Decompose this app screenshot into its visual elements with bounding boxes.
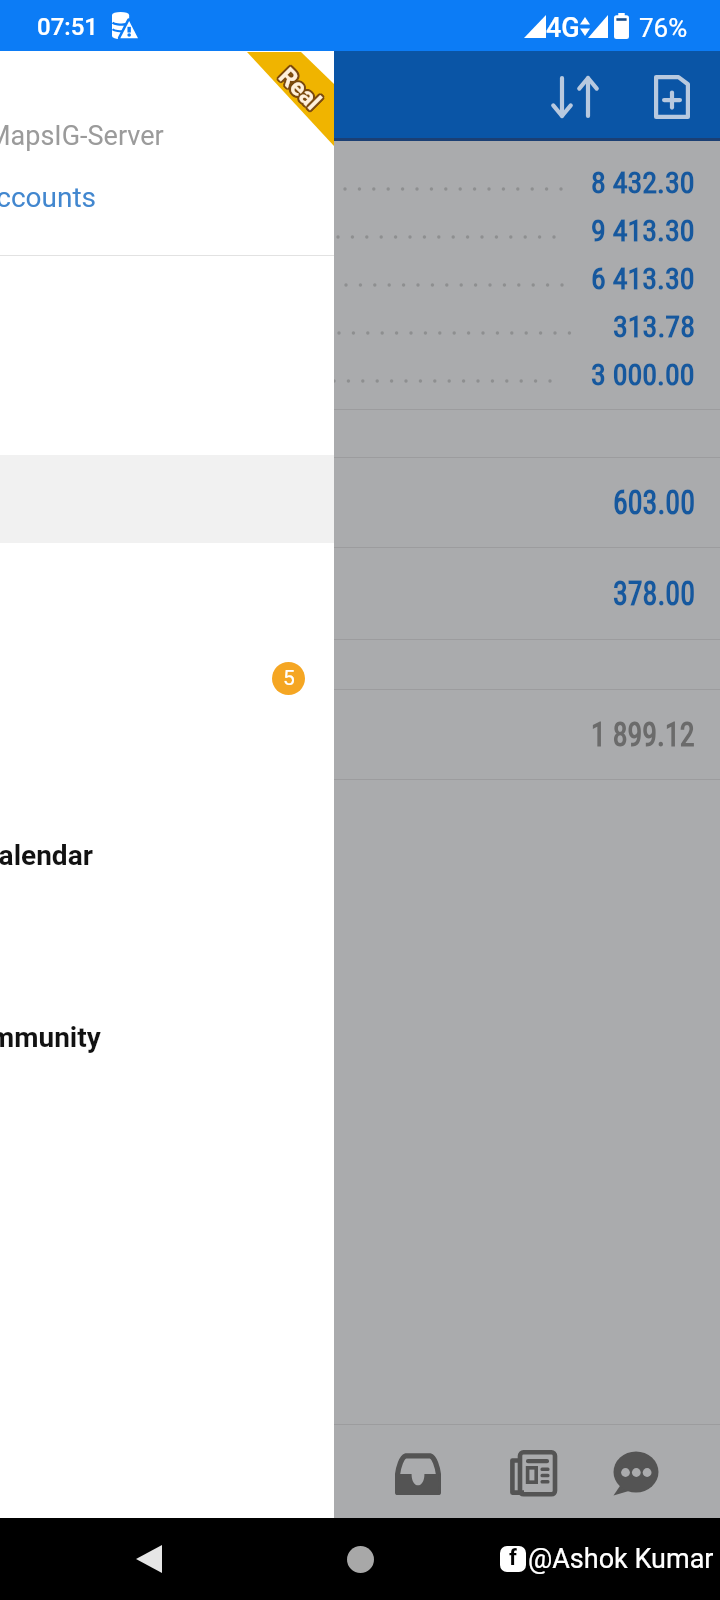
button[interactable]: Back bbox=[126, 1536, 172, 1582]
staticText: 1 899.12 bbox=[591, 715, 695, 754]
staticText: Real bbox=[275, 61, 329, 115]
button[interactable]: New document bbox=[644, 68, 700, 126]
staticText: Real bbox=[274, 64, 327, 118]
staticText: Real bbox=[273, 62, 327, 116]
staticText: 5 bbox=[283, 666, 295, 691]
button[interactable]: 603.00 bbox=[0, 458, 720, 547]
button[interactable]: Inbox bbox=[395, 1453, 441, 1495]
staticText: Real bbox=[273, 61, 327, 114]
staticText: 8 432.30 bbox=[591, 165, 695, 200]
staticText: Real bbox=[272, 63, 325, 117]
staticText: Real bbox=[274, 60, 327, 114]
button[interactable] bbox=[0, 640, 720, 689]
staticText: Real bbox=[272, 62, 325, 116]
staticText: 603.00 bbox=[613, 483, 695, 522]
button[interactable]: 8 432.30 bbox=[0, 157, 720, 205]
button[interactable]: 6 413.30 bbox=[0, 253, 720, 301]
staticText: MapsIG-Server bbox=[0, 120, 164, 152]
staticText: calendar bbox=[0, 839, 93, 872]
staticText: 3 000.00 bbox=[591, 357, 695, 392]
staticText: Real bbox=[271, 61, 325, 115]
staticText: f bbox=[509, 1546, 517, 1571]
button[interactable]: News bbox=[510, 1450, 557, 1495]
staticText: 76% bbox=[639, 13, 688, 43]
staticText: Real bbox=[274, 63, 327, 116]
staticText: 4G bbox=[546, 12, 580, 44]
staticText: Real bbox=[275, 63, 329, 116]
staticText: Real bbox=[272, 61, 326, 115]
staticText: 313.78 bbox=[613, 309, 695, 344]
staticText: 9 413.30 bbox=[591, 213, 695, 248]
button[interactable] bbox=[0, 410, 720, 457]
button[interactable]: 9 413.30 bbox=[0, 205, 720, 253]
staticText: Real bbox=[272, 64, 326, 118]
staticText: 378.00 bbox=[613, 574, 695, 613]
staticText: Real bbox=[272, 63, 326, 116]
button[interactable]: Home bbox=[337, 1536, 383, 1582]
button[interactable]: 313.78 bbox=[0, 301, 720, 349]
staticText: Real bbox=[272, 61, 325, 114]
staticText: Real bbox=[274, 63, 328, 117]
staticText: @Ashok Kumar bbox=[528, 1543, 714, 1575]
button[interactable]: 5 bbox=[272, 662, 305, 695]
staticText: mmunity bbox=[0, 1021, 101, 1054]
staticText: Real bbox=[274, 61, 328, 114]
button[interactable]: 378.00 bbox=[0, 548, 720, 639]
staticText: Real bbox=[274, 62, 328, 116]
staticText: 07:51 bbox=[37, 13, 98, 41]
button[interactable]: Sort bbox=[545, 68, 605, 126]
staticText: Accounts bbox=[0, 181, 97, 214]
button[interactable]: 3 000.00 bbox=[0, 349, 720, 397]
staticText: Real bbox=[274, 61, 327, 115]
staticText: 6 413.30 bbox=[591, 261, 695, 296]
staticText: Real bbox=[271, 63, 325, 116]
button[interactable]: 1 899.12 bbox=[0, 690, 720, 779]
staticText: Real bbox=[272, 60, 326, 114]
staticText: Real bbox=[273, 63, 327, 117]
button[interactable]: Messages bbox=[613, 1451, 659, 1496]
